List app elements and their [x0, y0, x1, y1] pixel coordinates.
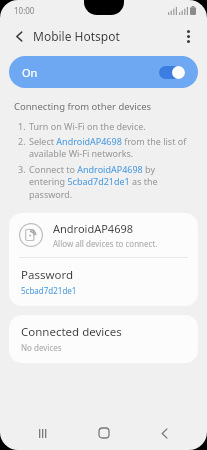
staticText: On	[22, 65, 38, 80]
staticText: 10:00	[14, 5, 35, 16]
button[interactable]: On	[9, 56, 198, 88]
button[interactable]: Back	[6, 23, 32, 49]
button[interactable]: Recent apps	[26, 416, 60, 450]
staticText: Connecting from other devices	[14, 100, 152, 113]
button[interactable]: More options	[175, 23, 201, 49]
staticText: 2.	[18, 135, 29, 147]
button[interactable]: Back	[147, 416, 181, 450]
staticText: Connect to AndroidAP4698 by entering 5cb…	[29, 163, 193, 201]
staticText: Allow all devices to connect.	[53, 238, 158, 249]
staticText: 3.	[18, 163, 29, 175]
staticText: Turn on Wi-Fi on the device.	[29, 120, 146, 132]
button[interactable]: Password	[9, 258, 198, 306]
staticText: Connected devices	[21, 324, 122, 340]
staticText: AndroidAP4698	[53, 221, 134, 236]
staticText: Mobile Hotspot	[33, 28, 120, 44]
button[interactable]: AndroidAP4698	[9, 213, 198, 257]
staticText: Password	[21, 267, 74, 283]
button[interactable]: Connected devices	[9, 315, 198, 363]
staticText: No devices	[21, 342, 62, 353]
button[interactable]: Home	[87, 416, 121, 450]
staticText: 5cbad7d21de1	[21, 285, 77, 296]
staticText: 1.	[18, 120, 29, 132]
staticText: Select AndroidAP4698 from the list of av…	[29, 135, 193, 160]
